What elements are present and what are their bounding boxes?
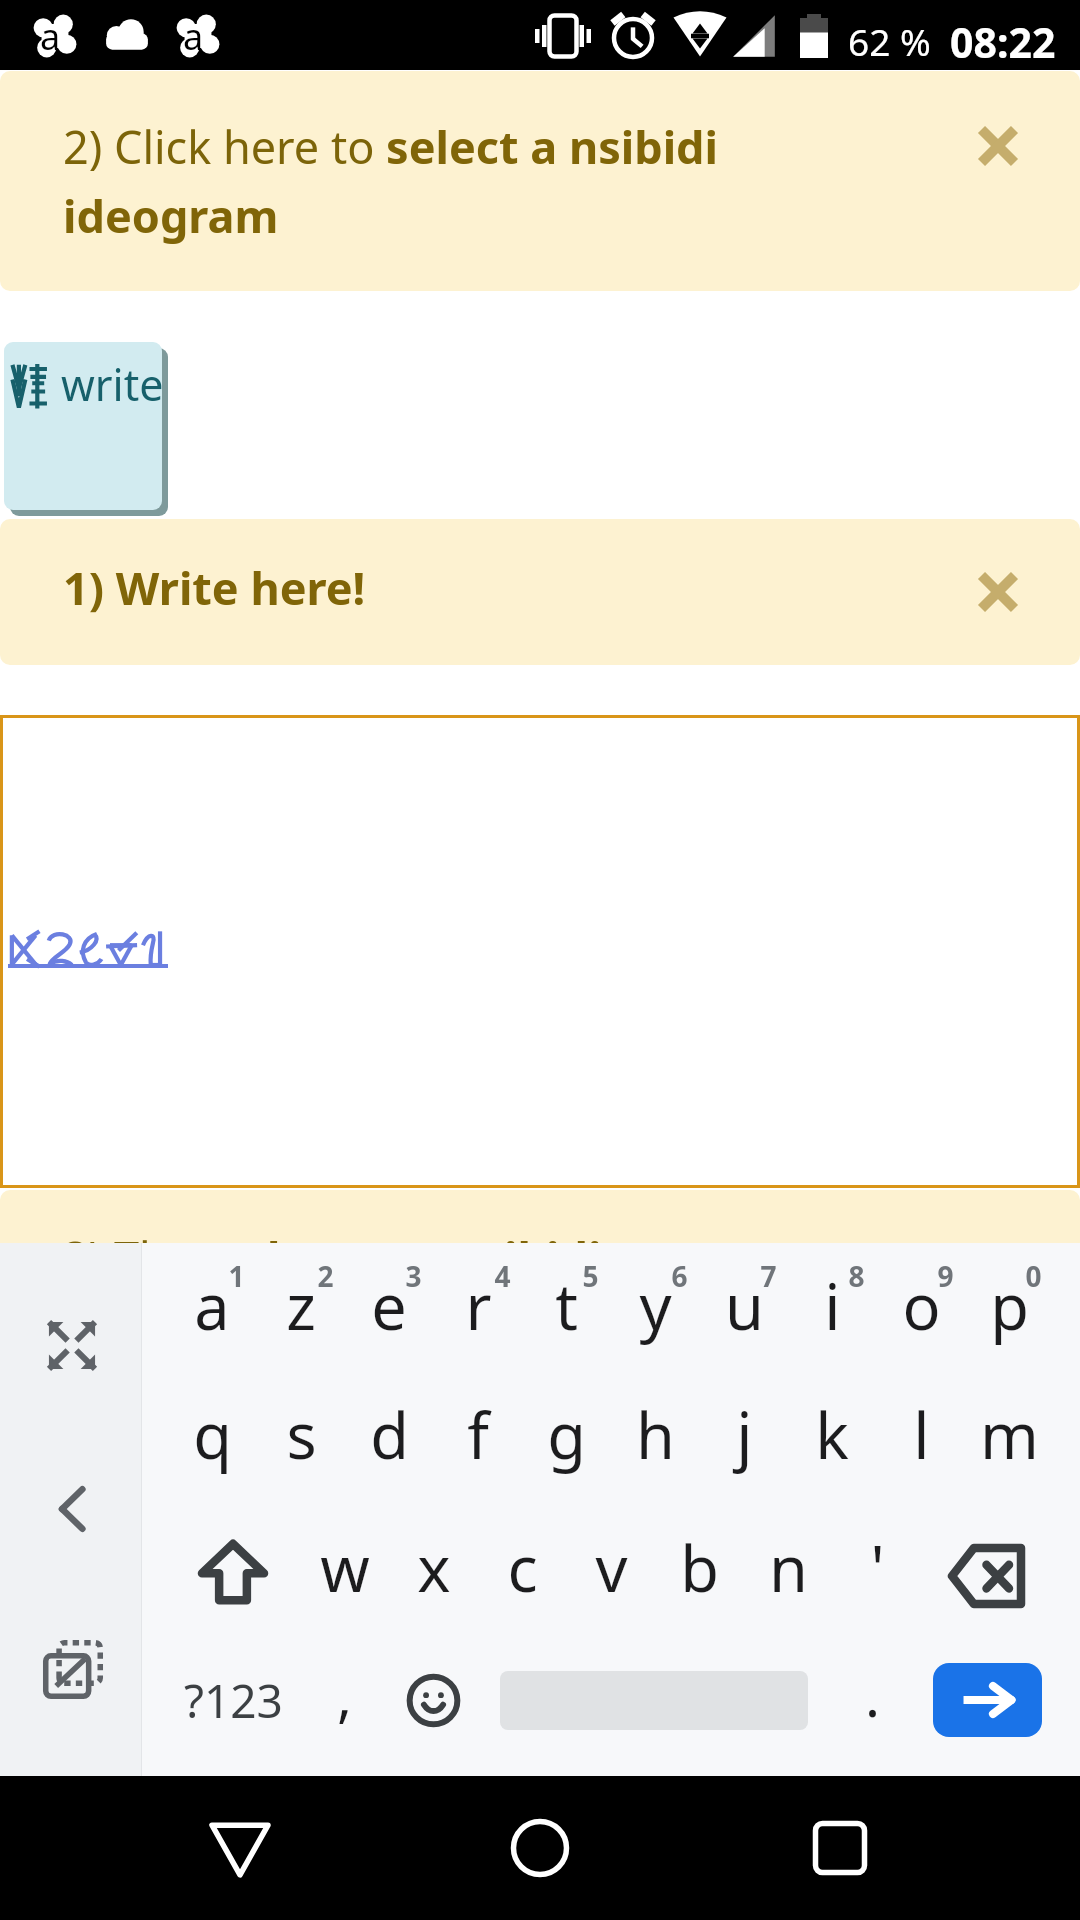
staticText: v <box>595 1525 628 1611</box>
button[interactable]: Expand keyboard <box>48 1321 96 1370</box>
button[interactable]: m <box>964 1380 1054 1490</box>
staticText: 62 % <box>848 16 931 66</box>
staticText: ' <box>870 1525 885 1611</box>
button[interactable]: l <box>876 1380 966 1490</box>
button[interactable]: Close <box>962 1227 1034 1299</box>
button[interactable]: y <box>610 1251 700 1361</box>
button[interactable]: 7 <box>723 1221 813 1331</box>
staticText: c <box>507 1525 538 1611</box>
staticText: ?123 <box>184 1669 283 1732</box>
staticText: p <box>990 1263 1029 1349</box>
button[interactable]: Close <box>962 110 1034 182</box>
staticText: write <box>61 355 162 414</box>
button[interactable]: , <box>310 1650 380 1740</box>
staticText: q <box>193 1392 232 1478</box>
staticText: d <box>370 1392 409 1478</box>
staticText: z <box>286 1263 316 1349</box>
button[interactable]: i <box>787 1251 877 1361</box>
button[interactable]: ?123 <box>163 1655 303 1745</box>
button[interactable]: d <box>344 1380 434 1490</box>
button[interactable]: Close <box>962 556 1034 628</box>
button[interactable]: 5 <box>545 1221 635 1331</box>
button[interactable]: 3) Then, choose a nsibidi ideogram <box>0 1190 1080 1350</box>
staticText: 2 <box>317 1257 334 1295</box>
staticText: s <box>286 1392 317 1478</box>
button[interactable]: h <box>610 1380 700 1490</box>
button[interactable]: g <box>521 1380 611 1490</box>
staticText: w <box>320 1525 370 1611</box>
staticText: m <box>980 1392 1039 1478</box>
button[interactable]: c <box>477 1513 567 1623</box>
button[interactable]: q <box>167 1380 257 1490</box>
staticText: a <box>183 12 204 61</box>
button[interactable]: Enter <box>933 1663 1042 1737</box>
button[interactable]: Emoji <box>407 1674 460 1727</box>
staticText: j <box>736 1392 753 1478</box>
button[interactable]: b <box>654 1513 744 1623</box>
staticText: a <box>40 12 61 61</box>
button[interactable]: u <box>699 1251 789 1361</box>
button[interactable]: o <box>876 1251 966 1361</box>
staticText: 0 <box>1025 1257 1042 1295</box>
button[interactable]: . <box>843 1650 903 1740</box>
staticText: 2) Click here to select a nsibidi ideogr… <box>63 116 793 246</box>
button[interactable]: e <box>344 1251 434 1361</box>
button[interactable]: Floating keyboard <box>44 1641 102 1698</box>
button[interactable]: f <box>433 1380 523 1490</box>
button[interactable]: 2) Click here to select a nsibidi ideogr… <box>0 71 1080 291</box>
staticText: u <box>725 1263 764 1349</box>
button[interactable]: write <box>4 342 162 510</box>
staticText: b <box>680 1525 719 1611</box>
button[interactable]: Back <box>200 1819 280 1881</box>
button[interactable]: Home <box>505 1813 575 1883</box>
staticText: n <box>769 1525 808 1611</box>
staticText: 3) Then, choose a nsibidi ideogram <box>63 1227 793 1350</box>
button[interactable]: Recent apps <box>805 1813 875 1883</box>
staticText: 1) Write here! <box>63 557 793 618</box>
button[interactable]: 9 <box>900 1221 990 1331</box>
staticText: 9 <box>937 1257 954 1295</box>
button[interactable]: p <box>964 1251 1054 1361</box>
button[interactable]: 1 <box>191 1221 281 1331</box>
staticText: 4 <box>494 1257 511 1295</box>
staticText: , <box>337 1657 353 1733</box>
button[interactable]: 2 <box>280 1221 370 1331</box>
button[interactable]: 1) Write here! <box>0 519 1080 665</box>
staticText: 3 <box>405 1257 422 1295</box>
staticText: 8 <box>848 1257 865 1295</box>
staticText: y <box>639 1263 672 1349</box>
staticText: h <box>636 1392 675 1478</box>
button[interactable]: n <box>743 1513 833 1623</box>
button[interactable]: r <box>433 1251 523 1361</box>
button[interactable]: Backspace <box>949 1545 1024 1607</box>
staticText: 5 <box>582 1257 599 1295</box>
staticText: t <box>555 1263 578 1349</box>
button[interactable]: Back <box>61 1488 83 1530</box>
button[interactable]: z <box>256 1251 346 1361</box>
button[interactable]: s <box>256 1380 346 1490</box>
button[interactable]: j <box>699 1380 789 1490</box>
staticText: e <box>371 1263 407 1349</box>
button[interactable]: Shift <box>200 1540 266 1604</box>
button[interactable]: 8 <box>811 1221 901 1331</box>
button[interactable]: t <box>521 1251 611 1361</box>
button[interactable]: 3 <box>368 1221 458 1331</box>
button[interactable]: 0 <box>988 1221 1078 1331</box>
button[interactable]: a <box>167 1251 257 1361</box>
staticText: r <box>465 1263 492 1349</box>
staticText: g <box>547 1392 586 1478</box>
button[interactable]: x <box>389 1513 479 1623</box>
button[interactable]: ' <box>832 1513 922 1623</box>
staticText: i <box>824 1263 841 1349</box>
staticText: o <box>902 1263 941 1349</box>
button[interactable]: 6 <box>634 1221 724 1331</box>
button[interactable]: w <box>300 1513 390 1623</box>
button[interactable]: k <box>787 1380 877 1490</box>
button[interactable] <box>0 715 1080 1188</box>
staticText: f <box>467 1392 489 1478</box>
button[interactable]: v <box>566 1513 656 1623</box>
button[interactable]: 4 <box>457 1221 547 1331</box>
staticText: l <box>913 1392 930 1478</box>
staticText: k <box>815 1392 849 1478</box>
